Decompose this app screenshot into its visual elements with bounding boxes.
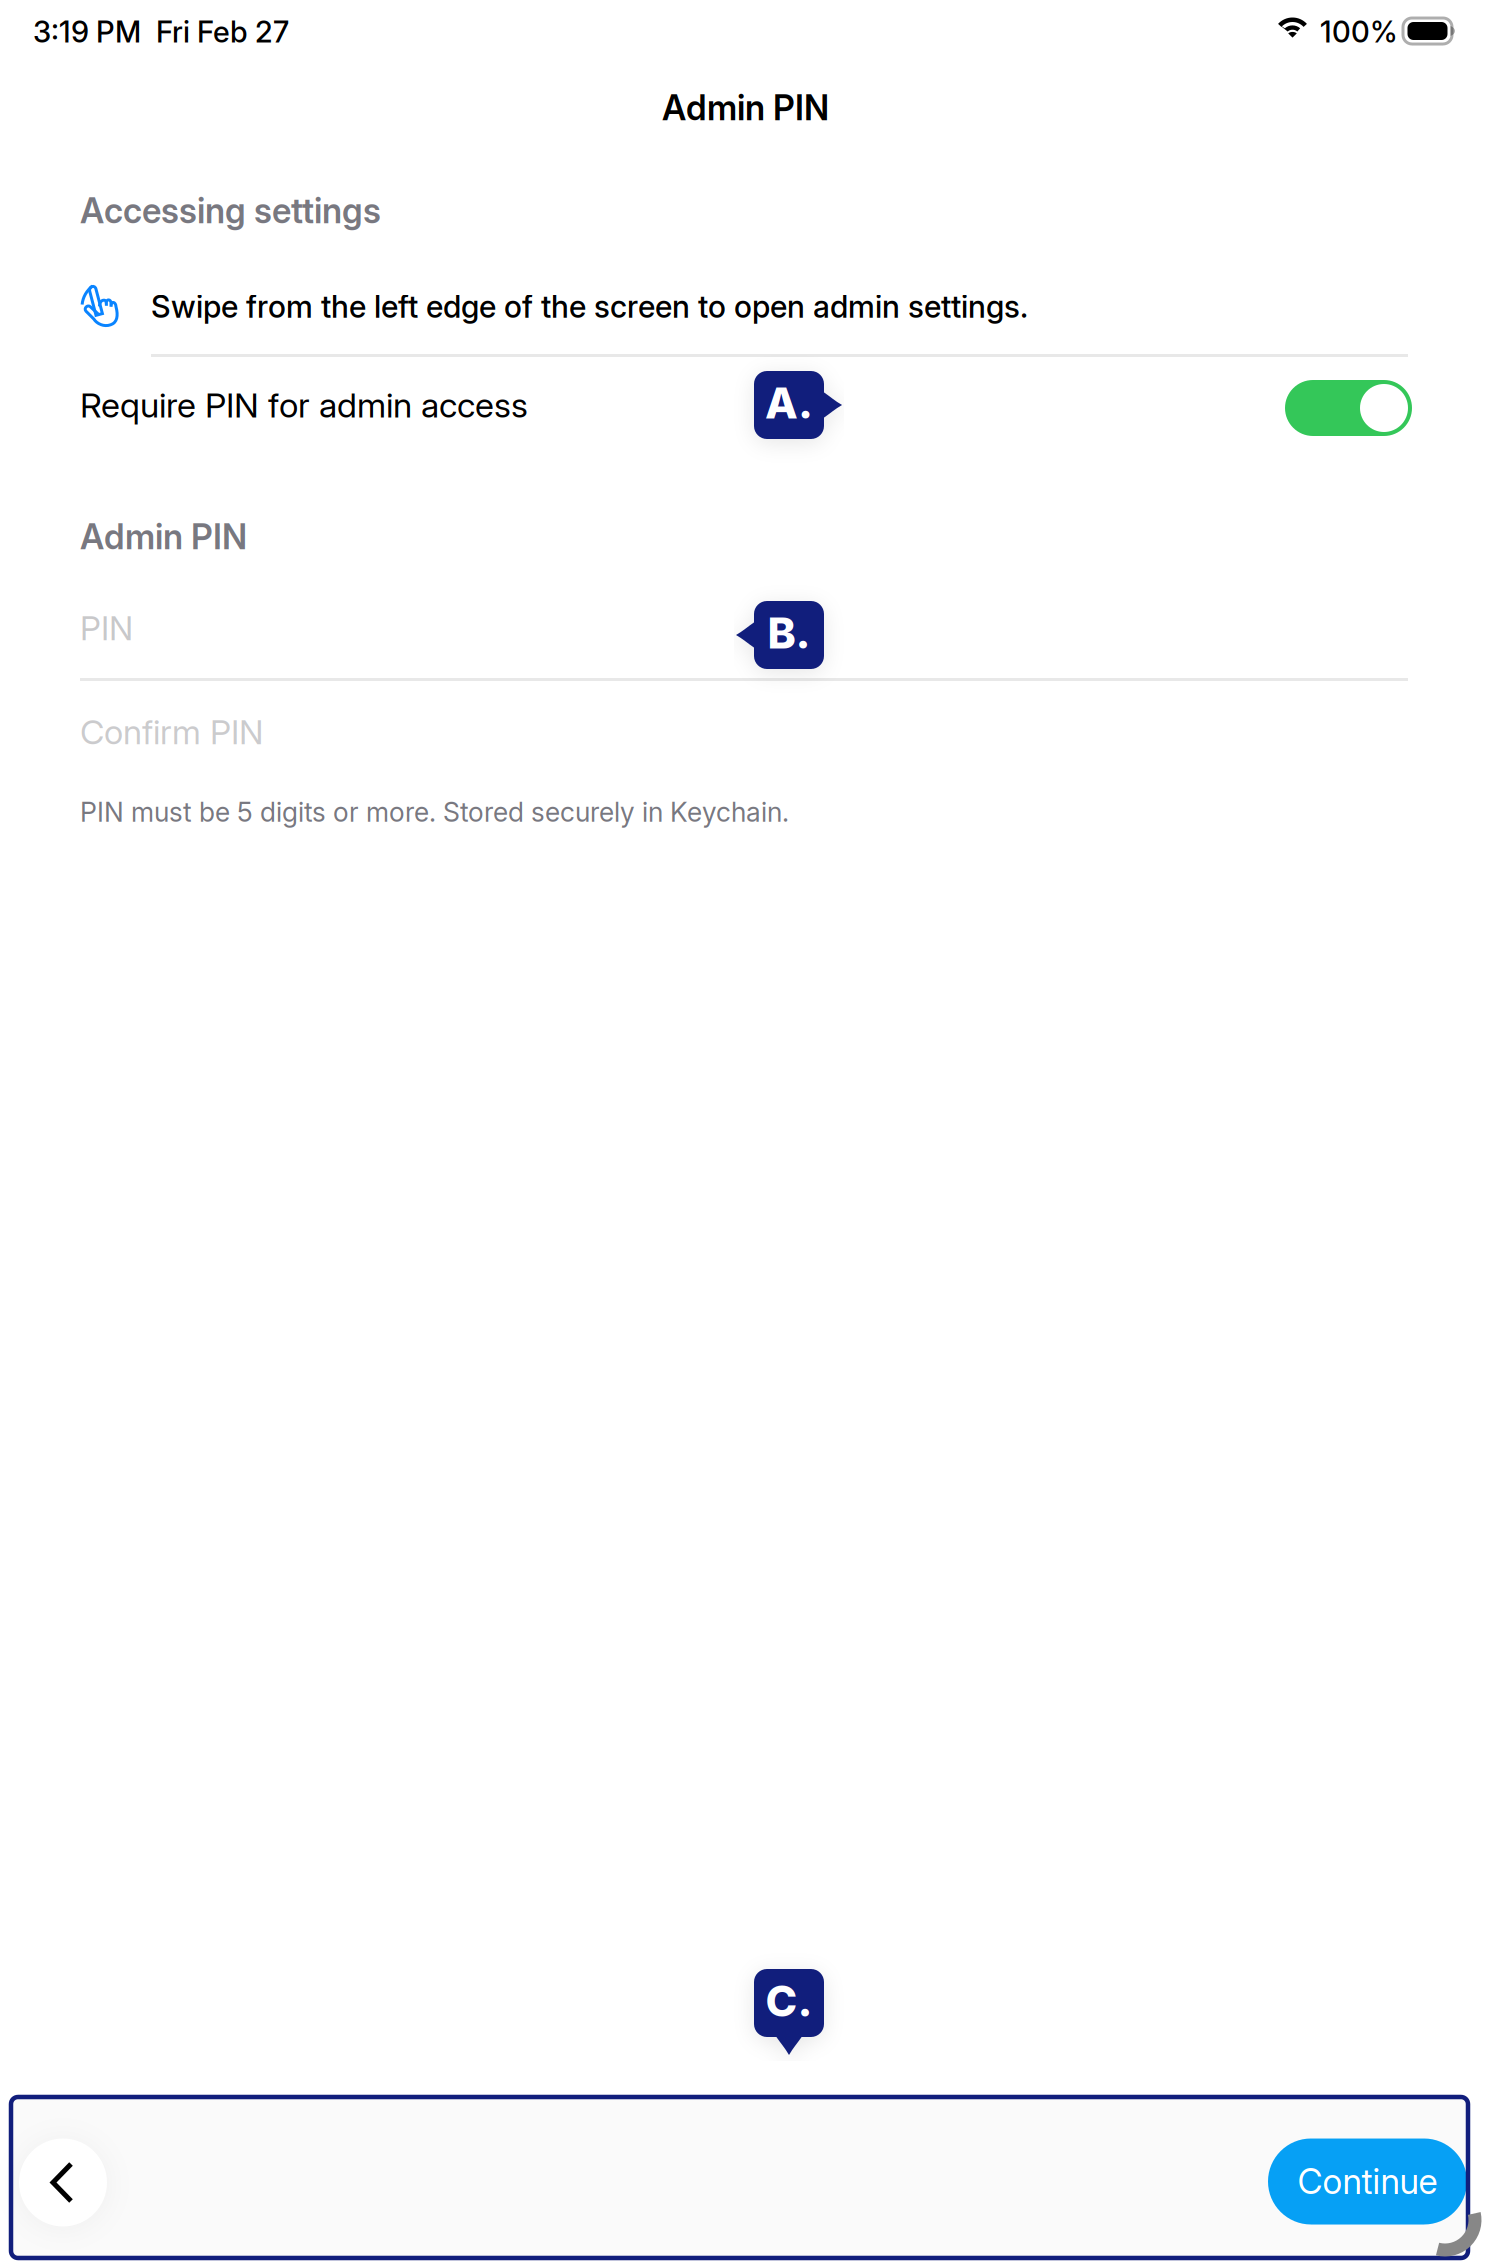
staticText: C. — [765, 1975, 812, 2027]
staticText: 100% — [1320, 14, 1398, 49]
staticText: Continue — [1297, 2160, 1437, 2202]
staticText: PIN must be 5 digits or more. Stored sec… — [80, 796, 789, 828]
button[interactable]: PIN — [80, 596, 1408, 678]
staticText: 3:19 PM — [33, 14, 141, 49]
button[interactable] — [1285, 380, 1412, 436]
button[interactable]: Confirm PIN — [80, 696, 1408, 778]
staticText: Fri Feb 27 — [156, 14, 289, 49]
button[interactable]: Back — [19, 2138, 107, 2226]
staticText: Admin PIN — [662, 87, 829, 128]
staticText: Admin PIN — [80, 516, 247, 557]
staticText: B. — [767, 607, 810, 659]
staticText: Require PIN for admin access — [80, 384, 528, 426]
staticText: Accessing settings — [80, 190, 381, 231]
staticText: PIN — [80, 608, 133, 648]
staticText: Confirm PIN — [80, 712, 263, 752]
button[interactable]: Require PIN for admin access — [80, 373, 1412, 437]
button[interactable]: Continue — [1268, 2134, 1467, 2220]
staticText: A. — [765, 377, 813, 429]
staticText: Swipe from the left edge of the screen t… — [151, 288, 1028, 325]
